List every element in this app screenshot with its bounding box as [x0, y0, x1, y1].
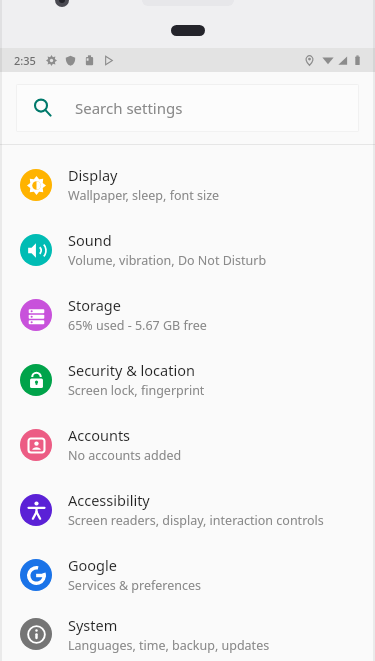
- button[interactable]: Display: [0, 152, 375, 217]
- staticText: Accounts: [68, 425, 131, 445]
- button[interactable]: Accounts: [0, 412, 375, 477]
- other: Search: [33, 98, 53, 118]
- button[interactable]: Search: [16, 84, 359, 132]
- button[interactable]: Storage: [0, 282, 375, 347]
- button[interactable]: Sound: [0, 217, 375, 282]
- staticText: Volume, vibration, Do Not Disturb: [68, 252, 267, 269]
- button[interactable]: Accessibility: [0, 477, 375, 542]
- staticText: Storage: [68, 295, 121, 315]
- staticText: 2:35: [14, 53, 36, 68]
- staticText: Display: [68, 165, 118, 185]
- staticText: Accessibility: [68, 490, 150, 510]
- staticText: Services & preferences: [68, 577, 202, 594]
- staticText: Google: [68, 555, 117, 575]
- staticText: Languages, time, backup, updates: [68, 637, 270, 654]
- button[interactable]: Google: [0, 542, 375, 607]
- button[interactable]: System: [0, 607, 375, 661]
- staticText: 65% used - 5.67 GB free: [68, 317, 207, 334]
- staticText: Wallpaper, sleep, font size: [68, 187, 220, 204]
- staticText: Search settings: [75, 98, 183, 118]
- staticText: Screen lock, fingerprint: [68, 382, 205, 399]
- staticText: System: [68, 615, 118, 635]
- staticText: Security & location: [68, 360, 195, 380]
- button[interactable]: Security & location: [0, 347, 375, 412]
- staticText: Screen readers, display, interaction con…: [68, 512, 324, 529]
- staticText: Sound: [68, 230, 112, 250]
- staticText: No accounts added: [68, 447, 182, 464]
